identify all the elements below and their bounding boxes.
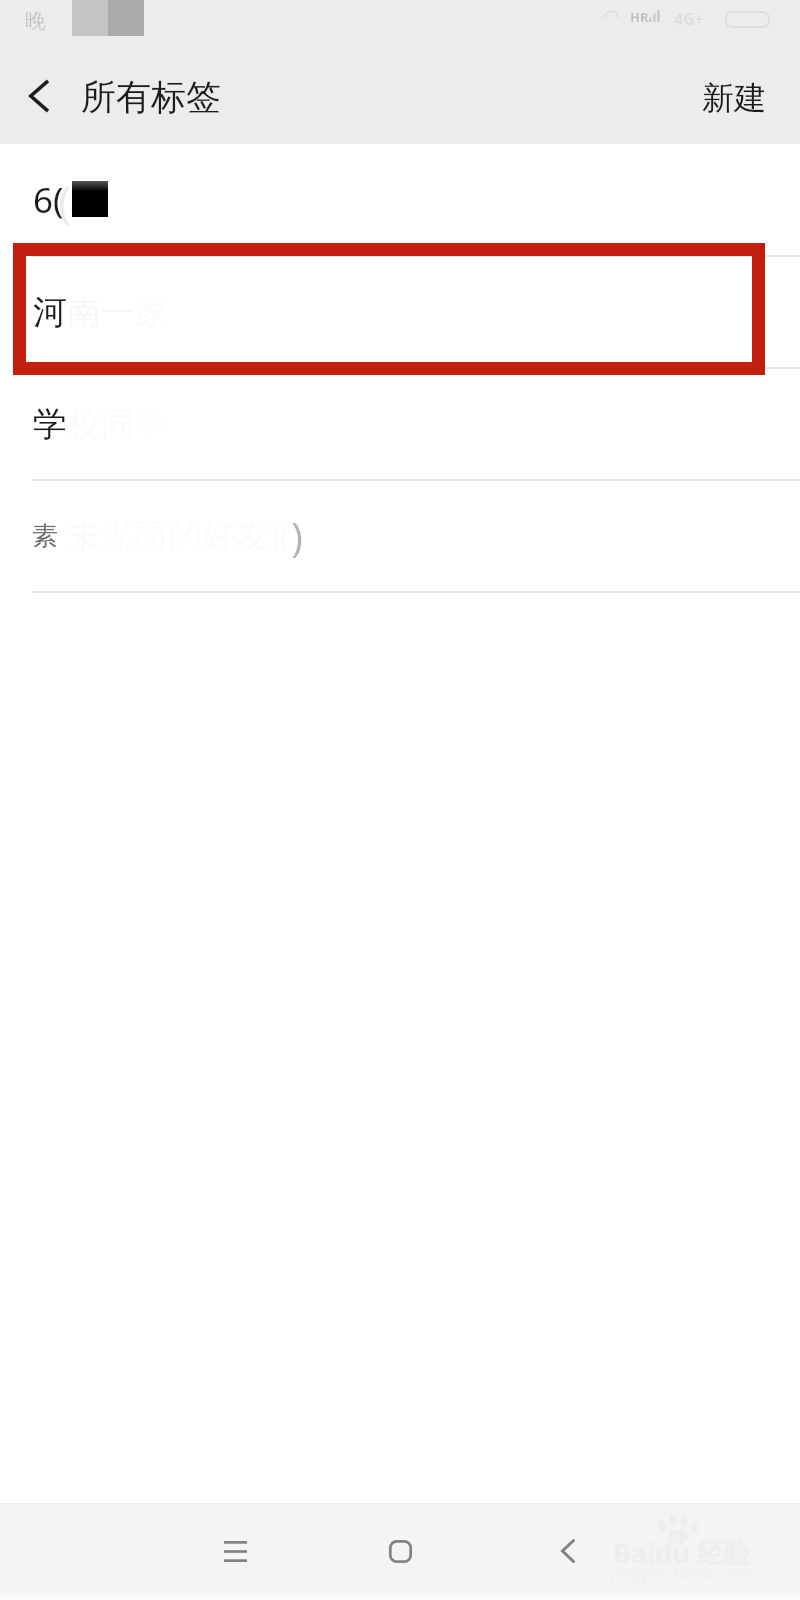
staticText: 晚 — [25, 8, 46, 34]
button[interactable]: Back — [528, 1511, 608, 1591]
button[interactable]: Back — [7, 64, 71, 128]
staticText: 学 — [33, 403, 67, 446]
button[interactable]: Home — [360, 1511, 440, 1591]
button[interactable]: 6( — [0, 144, 800, 256]
staticText: 6( — [33, 176, 64, 224]
staticText: 河 — [33, 291, 67, 334]
staticText: 素 — [32, 520, 58, 553]
staticText: HR — [630, 8, 649, 26]
staticText: 4G+ — [674, 8, 704, 30]
staticText: 新建 — [702, 78, 766, 118]
button[interactable]: Recent apps — [195, 1511, 275, 1591]
button[interactable]: 新建 — [684, 66, 784, 130]
staticText: ( — [58, 171, 72, 231]
staticText: 所有标签 — [81, 75, 221, 119]
staticText: ) — [291, 509, 303, 563]
button[interactable]: 河 — [0, 256, 800, 368]
button[interactable]: 学 — [0, 368, 800, 480]
button[interactable]: 素 — [0, 480, 800, 592]
staticText: 未谋面的好友们 — [66, 515, 304, 558]
